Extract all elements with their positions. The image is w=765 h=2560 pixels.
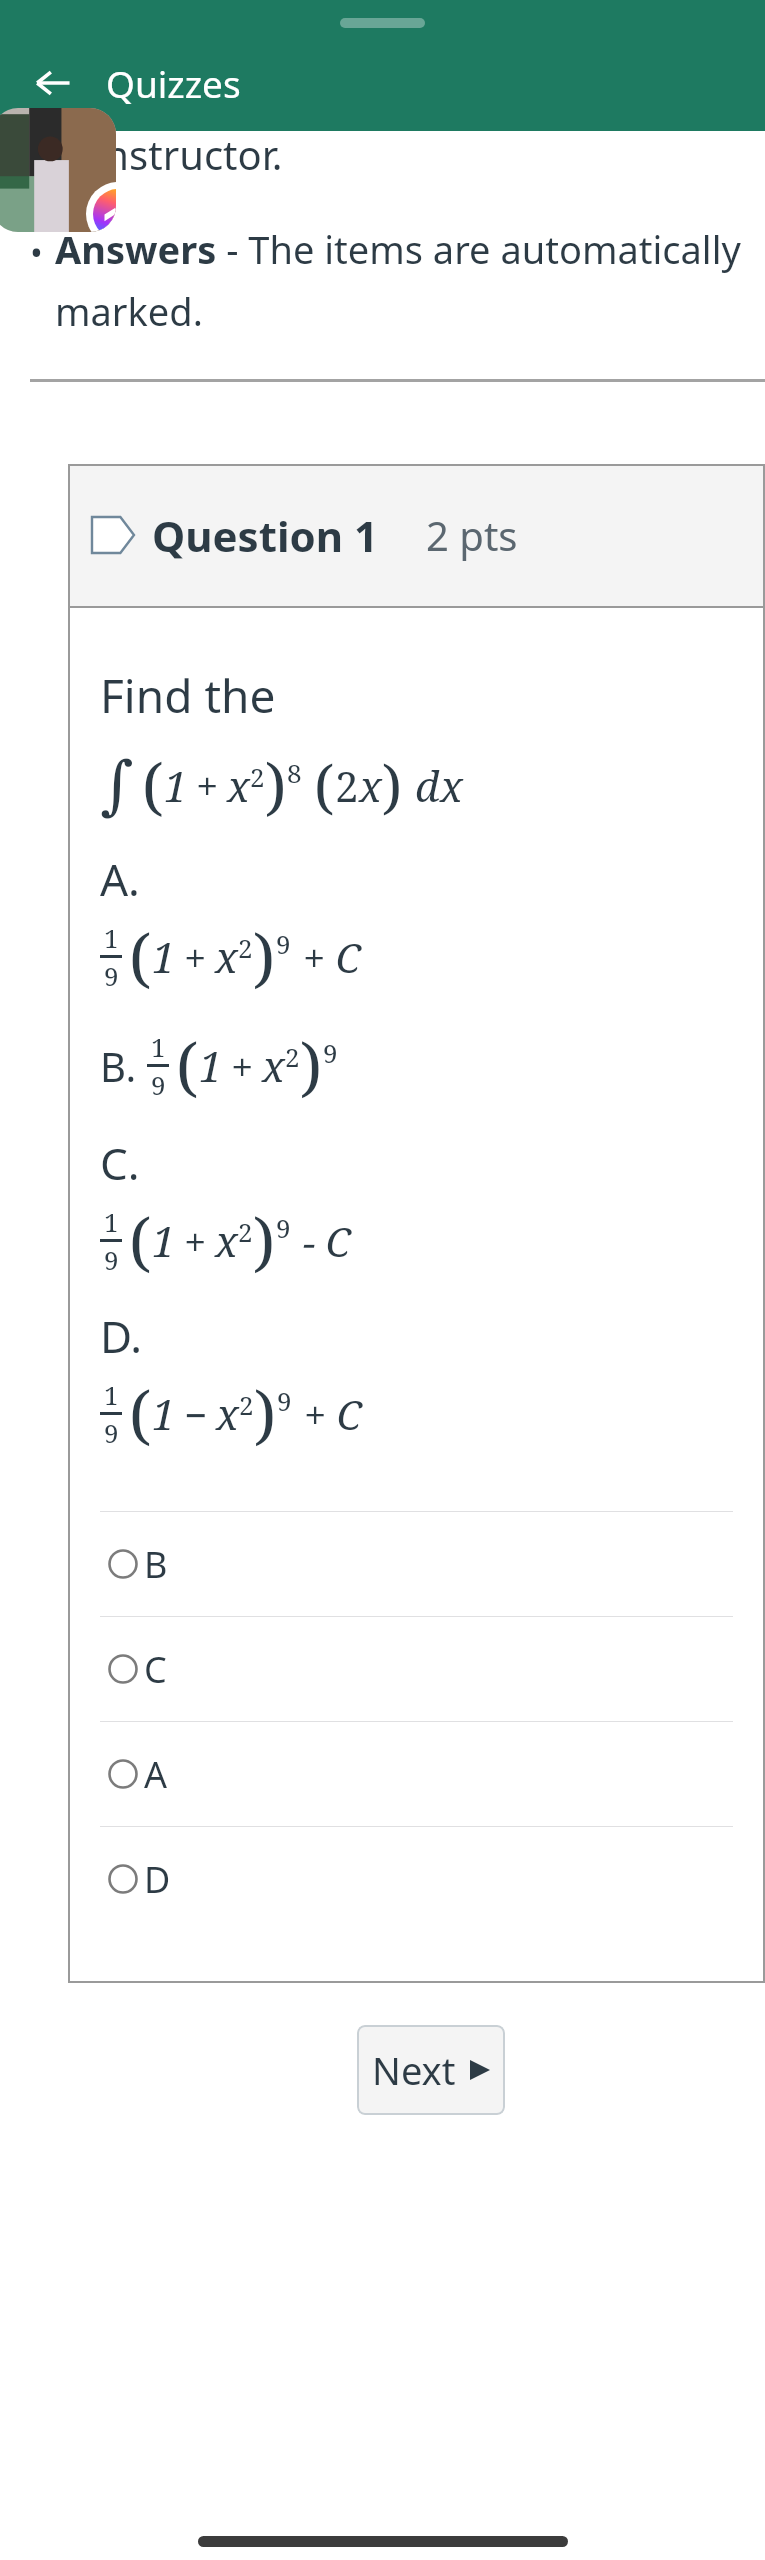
staticText: 2 pts [426, 508, 518, 562]
staticText: Quizzes [106, 58, 241, 108]
staticText: ( [176, 1022, 199, 1109]
staticText: 1 [152, 1212, 176, 1269]
staticText: ( [129, 1197, 152, 1284]
staticText: ) [253, 913, 276, 1000]
button[interactable]: Messenger chat head [0, 108, 116, 232]
staticText: B. [100, 1039, 137, 1093]
staticText: ) [265, 743, 287, 827]
staticText: ( [142, 743, 164, 827]
staticText: 9 [104, 958, 119, 993]
staticText: C. [100, 1133, 140, 1193]
staticText: + [196, 758, 219, 812]
staticText: + C [303, 930, 361, 984]
staticText: ) [300, 1022, 323, 1109]
staticText: Question 1 [152, 507, 378, 564]
staticText: D. [100, 1306, 143, 1366]
staticText: 9 [277, 1383, 292, 1418]
staticText: 9 [276, 1210, 291, 1245]
staticText: • [30, 229, 43, 275]
button[interactable]: Next [357, 2025, 505, 2115]
staticText: 9 [104, 1415, 119, 1450]
staticText: + [184, 930, 207, 984]
staticText: ) [253, 1197, 276, 1284]
staticText: 9 [276, 926, 291, 961]
button[interactable]: B [100, 1512, 733, 1616]
staticText: + C [304, 1387, 362, 1441]
staticText: 1 [151, 1029, 166, 1064]
staticText: ) [382, 746, 403, 825]
staticText: 1 [152, 928, 176, 985]
staticText: x [215, 1212, 238, 1269]
staticText: 8 [287, 755, 302, 790]
staticText: 2 [335, 757, 359, 814]
staticText: x [227, 757, 250, 814]
staticText: 1 [199, 1037, 223, 1094]
staticText: 1 [104, 1204, 119, 1239]
staticText: A [144, 1750, 168, 1799]
staticText: 1 [104, 1377, 119, 1412]
button[interactable]: A [100, 1722, 733, 1826]
staticText: x [215, 928, 238, 985]
staticText: ( [129, 913, 152, 1000]
staticText: 2 [250, 759, 265, 794]
staticText: C [144, 1645, 167, 1694]
staticText: Next [372, 2044, 456, 2096]
staticText: 2 [239, 1387, 254, 1422]
staticText: ) [254, 1370, 277, 1457]
staticText: x [359, 757, 382, 814]
button[interactable]: C [100, 1617, 733, 1721]
staticText: 2 [238, 1214, 253, 1249]
staticText: x [216, 1385, 239, 1442]
staticText: d [415, 757, 440, 814]
staticText: A. [100, 849, 140, 909]
staticText: x [262, 1037, 285, 1094]
staticText: 9 [104, 1242, 119, 1277]
staticText: Answers - The items are automatically ma… [55, 223, 749, 337]
staticText: D [144, 1855, 171, 1904]
staticText: 1 [164, 757, 188, 814]
staticText: − C [303, 1214, 351, 1268]
staticText: instructor. [94, 127, 283, 181]
staticText: + [231, 1039, 254, 1093]
button[interactable]: D [100, 1827, 733, 1931]
staticText: 1 [104, 920, 119, 955]
staticText: Find the [100, 664, 276, 727]
staticText: − [184, 1387, 208, 1441]
staticText: ∫ [100, 748, 134, 823]
staticText: 9 [323, 1035, 338, 1070]
staticText: + [184, 1214, 207, 1268]
staticText: ( [314, 746, 335, 825]
staticText: 1 [152, 1385, 176, 1442]
staticText: x [440, 757, 463, 814]
staticText: 9 [151, 1067, 166, 1102]
staticText: 2 [285, 1039, 300, 1074]
staticText: 2 [238, 930, 253, 965]
button[interactable]: Back [22, 52, 84, 114]
staticText: B [144, 1540, 168, 1589]
staticText: ( [129, 1370, 152, 1457]
